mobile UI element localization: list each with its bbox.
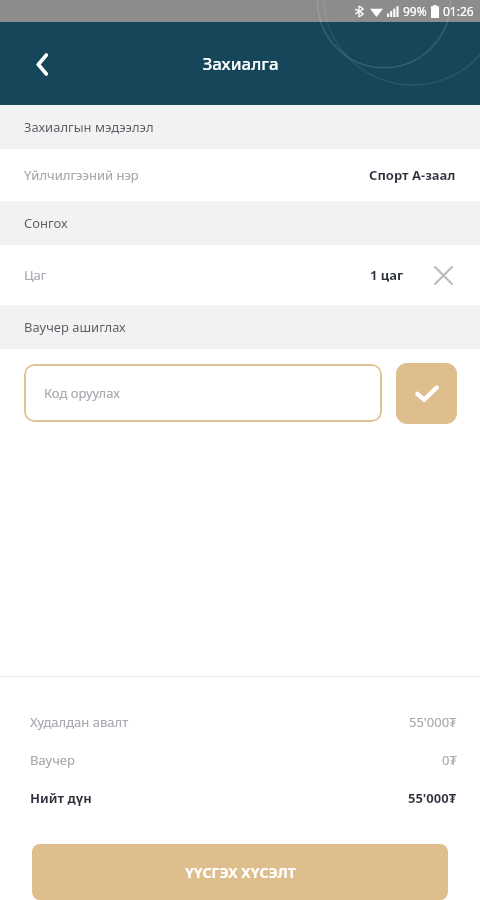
button[interactable]: ҮҮСГЭХ ХҮСЭЛТ	[32, 844, 448, 900]
staticText: Цаг	[24, 266, 47, 284]
staticText: Спорт А-заал	[369, 166, 456, 184]
button[interactable]: Clear	[430, 262, 456, 288]
staticText: ҮҮСГЭХ ХҮСЭЛТ	[185, 863, 296, 882]
button[interactable]: Үйлчилгээний нэр	[0, 149, 480, 201]
button[interactable]: Apply voucher	[396, 363, 457, 424]
staticText: 01:26	[443, 3, 474, 19]
staticText: Үйлчилгээний нэр	[24, 166, 139, 184]
staticText: 55'000₮	[408, 789, 457, 807]
staticText: 99%	[403, 3, 427, 19]
button[interactable]: Цаг	[0, 245, 480, 305]
button[interactable]: Back	[20, 42, 64, 86]
staticText: Захиалга	[202, 52, 279, 75]
staticText: Ваучер ашиглах	[24, 318, 126, 336]
button[interactable]: Код оруулах	[24, 364, 382, 422]
staticText: Худалдан авалт	[30, 713, 129, 731]
staticText: Нийт дүн	[30, 789, 92, 807]
staticText: 55'000₮	[409, 713, 457, 731]
staticText: 0₮	[442, 751, 457, 769]
staticText: Код оруулах	[44, 384, 120, 402]
staticText: Захиалгын мэдээлэл	[24, 118, 154, 136]
staticText: Сонгох	[24, 214, 68, 232]
staticText: 1 цаг	[370, 266, 404, 284]
staticText: Ваучер	[30, 751, 75, 769]
